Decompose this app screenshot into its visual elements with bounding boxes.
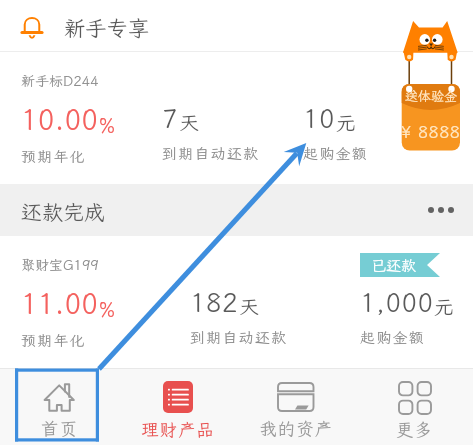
staticText: 聚财宝G199 bbox=[21, 256, 99, 274]
staticText: 11.00 bbox=[21, 285, 99, 322]
staticText: 元 bbox=[336, 109, 356, 135]
staticText: % bbox=[99, 296, 115, 322]
staticText: 预期年化 bbox=[21, 147, 86, 167]
staticText: 新手标D244 bbox=[21, 72, 99, 90]
staticText: 起购金额 bbox=[303, 144, 368, 164]
staticText: 1,000 bbox=[360, 285, 434, 319]
staticText: 7 bbox=[162, 101, 179, 135]
button[interactable]: Notifications bbox=[0, 0, 473, 51]
staticText: 天 bbox=[179, 109, 199, 135]
staticText: 首页 bbox=[41, 417, 78, 440]
staticText: 预期年化 bbox=[21, 331, 86, 351]
staticText: 到期自动还款 bbox=[162, 144, 260, 164]
button[interactable]: 我的资产 bbox=[237, 369, 355, 445]
staticText: 10 bbox=[303, 101, 336, 135]
staticText: 起购金额 bbox=[360, 328, 425, 348]
other: Notifications bbox=[18, 12, 46, 40]
staticText: 新手专享 bbox=[64, 14, 150, 42]
staticText: 元 bbox=[434, 293, 454, 319]
button[interactable]: 首页 bbox=[0, 369, 119, 445]
button[interactable]: 更多 bbox=[355, 369, 473, 445]
staticText: 理财产品 bbox=[141, 418, 215, 441]
button[interactable]: 新手标D244 bbox=[0, 52, 473, 184]
staticText: % bbox=[99, 112, 115, 138]
staticText: 已还款 bbox=[371, 256, 417, 276]
button[interactable]: More options bbox=[428, 207, 454, 213]
button[interactable]: 理财产品 bbox=[119, 369, 237, 445]
staticText: 天 bbox=[239, 293, 259, 319]
staticText: 更多 bbox=[396, 418, 433, 441]
staticText: 到期自动还款 bbox=[190, 328, 288, 348]
staticText: 还款完成 bbox=[21, 198, 105, 226]
staticText: ¥ 8888 bbox=[401, 120, 461, 142]
staticText: 10.00 bbox=[21, 101, 99, 138]
staticText: 送体验金 bbox=[405, 88, 458, 105]
button[interactable]: 聚财宝G199 bbox=[0, 236, 473, 368]
staticText: 182 bbox=[190, 285, 239, 319]
staticText: 我的资产 bbox=[259, 417, 333, 440]
